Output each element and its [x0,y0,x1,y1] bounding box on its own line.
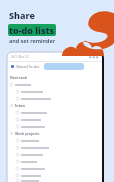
button[interactable] [7,109,55,116]
button[interactable] [44,63,84,70]
staticText: to-do lists [9,24,55,36]
button[interactable] [7,116,55,123]
button[interactable] [7,123,55,130]
button[interactable] [7,165,55,172]
staticText: Shared To-dos [16,64,40,69]
staticText: 9:41 Mar 12 [11,55,29,59]
staticText: Next task [10,75,27,80]
staticText: Work projects [15,131,40,136]
button[interactable] [7,95,55,102]
button[interactable] [7,151,55,158]
button[interactable] [7,88,55,95]
button[interactable] [7,172,55,179]
button[interactable] [7,158,55,165]
button[interactable] [7,144,55,151]
staticText: Inbox [15,103,25,108]
staticText: and set reminder [9,37,56,44]
button[interactable] [7,81,55,88]
staticText: Share [9,9,35,21]
staticText: ● ● ● [89,55,99,59]
button[interactable] [7,179,55,182]
button[interactable] [7,137,55,144]
